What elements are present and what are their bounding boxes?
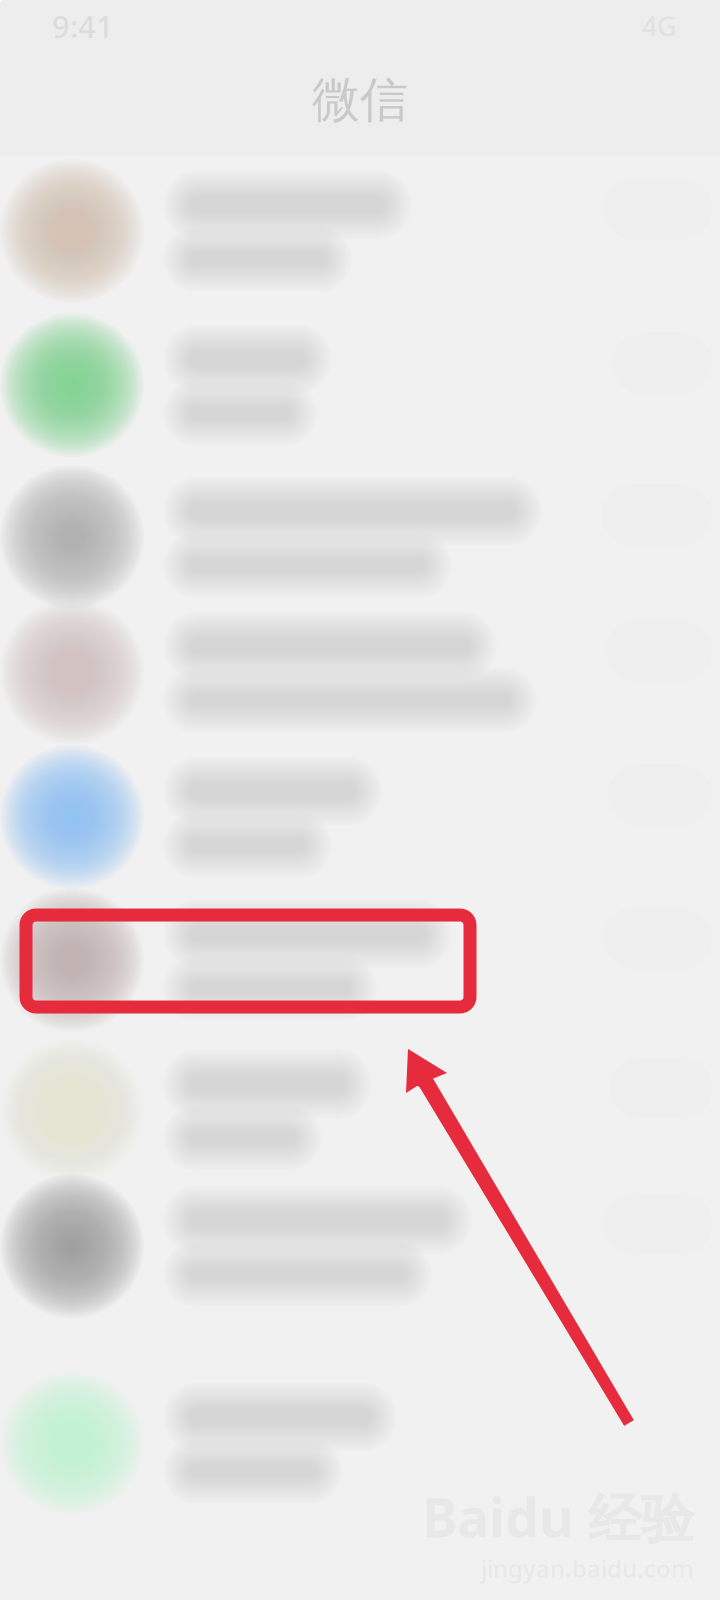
button[interactable]	[0, 717, 720, 917]
button[interactable]	[0, 860, 720, 1060]
staticText: jingyan.baidu.com	[481, 1552, 694, 1584]
button[interactable]	[0, 285, 720, 485]
button[interactable]	[0, 1343, 720, 1543]
staticText: 微信	[312, 70, 408, 129]
button[interactable]	[0, 1146, 720, 1346]
staticText: 4G	[642, 8, 676, 44]
button[interactable]	[0, 131, 720, 331]
button[interactable]	[0, 572, 720, 772]
staticText: Baidu 经验	[422, 1481, 694, 1552]
button[interactable]	[0, 1010, 720, 1210]
button[interactable]	[0, 437, 720, 637]
staticText: 9:41	[52, 6, 114, 46]
